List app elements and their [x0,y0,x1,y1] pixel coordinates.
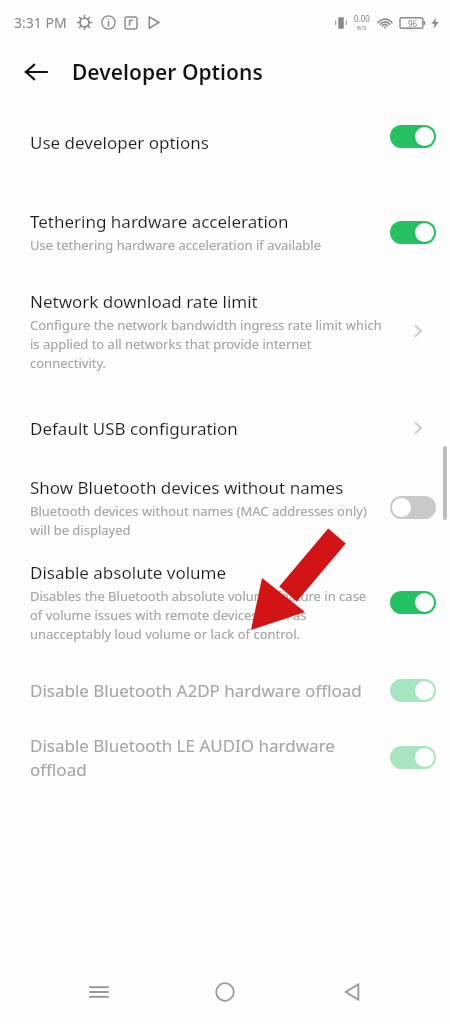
button[interactable]: Tethering hardware acceleration [0,210,450,254]
staticText: Disable absolute volume [30,561,227,584]
staticText: Configure the network bandwidth ingress … [30,316,390,372]
staticText: Disable Bluetooth A2DP hardware offload [30,679,362,702]
button[interactable]: Disable absolute volume [0,561,450,643]
button[interactable]: Open [400,410,436,446]
button[interactable]: Default USB configuration [0,410,450,446]
staticText: Show Bluetooth devices without names [30,476,344,499]
button[interactable]: Back [16,52,56,92]
button[interactable]: Toggle on [390,591,436,614]
button[interactable]: Recent apps [71,964,127,1020]
staticText: Bluetooth devices without names (MAC add… [30,502,380,539]
button[interactable]: Back [324,964,380,1020]
button[interactable]: Network download rate limit [0,290,450,372]
button[interactable]: Home [197,964,253,1020]
button[interactable]: Toggle on [390,221,436,244]
button[interactable]: Toggle on [390,746,436,769]
staticText: Use developer options [30,131,209,154]
staticText: 3:31 PM [14,13,67,32]
button[interactable]: Disable Bluetooth A2DP hardware offload [0,679,450,702]
staticText: Disables the Bluetooth absolute volume f… [30,587,380,643]
staticText: Use tethering hardware acceleration if a… [30,236,322,254]
button[interactable]: Use developer options [0,118,450,154]
button[interactable]: Show Bluetooth devices without names [0,476,450,539]
staticText: Disable Bluetooth LE AUDIO hardware offl… [30,734,380,781]
staticText: 96 [408,18,418,29]
button[interactable]: Open [400,313,436,349]
button[interactable]: Disable Bluetooth LE AUDIO hardware offl… [0,734,450,781]
button[interactable]: Toggle off [390,496,436,519]
staticText: Developer Options [72,58,263,87]
staticText: 0.00 [354,13,370,24]
staticText: Network download rate limit [30,290,258,313]
button[interactable]: Toggle on [390,125,436,148]
staticText: Tethering hardware acceleration [30,210,289,233]
staticText: B/S [357,24,367,32]
button[interactable]: Toggle on [390,679,436,702]
staticText: Default USB configuration [30,417,238,440]
